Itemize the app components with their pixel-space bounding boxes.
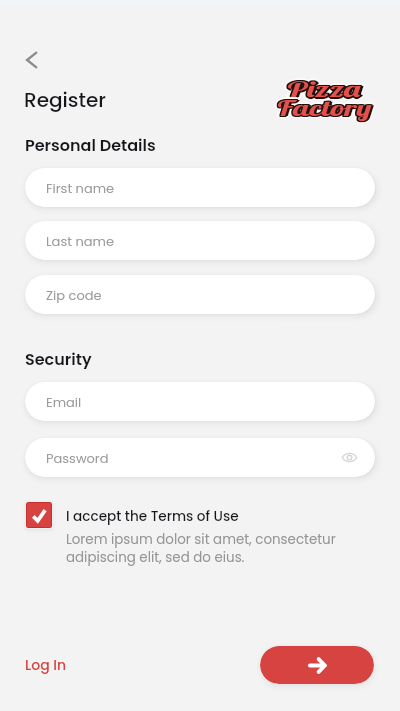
staticText: Pizza [289,77,365,104]
staticText: Factory [273,92,369,119]
staticText: Pizza [287,76,364,103]
staticText: Factory [276,96,372,123]
other: Show password [342,450,357,465]
staticText: Pizza [289,75,365,103]
staticText: Factory [275,95,370,122]
button[interactable]: Back [22,49,44,71]
staticText: First name [46,179,115,197]
staticText: Pizza [286,75,362,103]
button[interactable]: Email [25,382,375,421]
button[interactable]: First name [25,168,375,207]
staticText: Security [25,348,92,370]
staticText: Pizza [285,74,361,102]
staticText: Pizza [283,73,359,101]
staticText: Log In [25,655,67,675]
staticText: Factory [279,94,374,121]
staticText: Register [24,86,106,114]
staticText: Factory [276,91,372,118]
staticText: Lorem ipsum dolor sit amet, consectetur … [66,530,356,566]
staticText: Factory [272,94,368,121]
staticText: Factory [280,94,376,121]
button[interactable]: Password [25,438,375,477]
staticText: Pizza [282,75,358,103]
staticText: I accept the Terms of Use [66,507,239,526]
staticText: Last name [46,232,114,250]
staticText: Email [46,393,82,411]
staticText: Pizza [286,74,362,102]
staticText: Factory [279,96,374,123]
staticText: Factory [275,93,370,120]
button[interactable]: Zip code [25,275,375,314]
staticText: Pizza [290,75,367,103]
staticText: Zip code [46,286,102,304]
button[interactable]: Log In [23,651,69,679]
staticText: Personal Details [25,134,156,156]
staticText: Pizza [289,73,365,101]
staticText: Pizza [286,78,362,105]
staticText: Pizza [286,77,362,104]
staticText: Pizza [287,74,364,102]
staticText: Factory [276,93,372,120]
staticText: Factory [279,92,374,119]
button[interactable]: Continue [260,646,374,684]
staticText: Password [46,449,109,467]
button[interactable]: Accept terms of use [27,503,51,527]
staticText: Pizza [283,77,359,104]
staticText: Factory [273,96,369,123]
staticText: Factory [275,94,370,121]
button[interactable]: Last name [25,221,375,260]
staticText: Factory [277,93,373,120]
staticText: Factory [276,94,372,121]
staticText: Factory [276,97,372,124]
staticText: Pizza [286,72,362,100]
staticText: Pizza [285,76,361,103]
staticText: Factory [277,95,373,122]
staticText: Pizza [285,75,361,103]
